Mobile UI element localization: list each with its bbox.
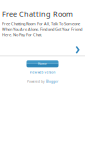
button[interactable]: Blogger <box>46 79 58 84</box>
staticText: Home <box>38 62 47 66</box>
staticText: View web version <box>29 70 55 74</box>
button[interactable]: View web version <box>29 70 55 74</box>
staticText: Free Chatting Room <box>2 9 73 19</box>
staticText: Free Chatting Room For All, Talk To Some… <box>2 21 82 37</box>
staticText: Powered by <box>27 79 45 84</box>
button[interactable]: Next page <box>75 45 80 54</box>
button[interactable]: Home <box>26 60 58 67</box>
staticText: Blogger <box>46 79 58 84</box>
